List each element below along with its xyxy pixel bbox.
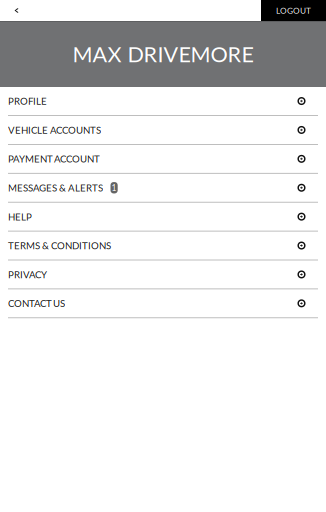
button[interactable]: Back [0,0,32,21]
button[interactable]: PRIVACY [0,260,326,289]
button[interactable]: CONTACT US [0,289,326,318]
button[interactable]: TERMS & CONDITIONS [0,231,326,260]
staticText: LOGOUT [276,5,311,15]
staticText: VEHICLE ACCOUNTS [8,124,101,136]
staticText: TERMS & CONDITIONS [8,240,111,251]
staticText: PROFILE [8,95,47,107]
button[interactable]: LOGOUT [261,0,326,21]
button[interactable]: PROFILE [0,87,326,116]
button[interactable]: PAYMENT ACCOUNT [0,145,326,174]
button[interactable]: VEHICLE ACCOUNTS [0,116,326,145]
button[interactable]: HELP [0,203,326,231]
staticText: 1 [112,183,117,193]
staticText: PAYMENT ACCOUNT [8,153,100,165]
staticText: HELP [8,211,32,222]
staticText: CONTACT US [8,298,65,309]
staticText: MAX DRIVEMORE [72,41,253,67]
staticText: PRIVACY [8,269,47,280]
button[interactable]: MESSAGES & ALERTS [0,174,326,203]
staticText: MESSAGES & ALERTS [8,182,103,194]
